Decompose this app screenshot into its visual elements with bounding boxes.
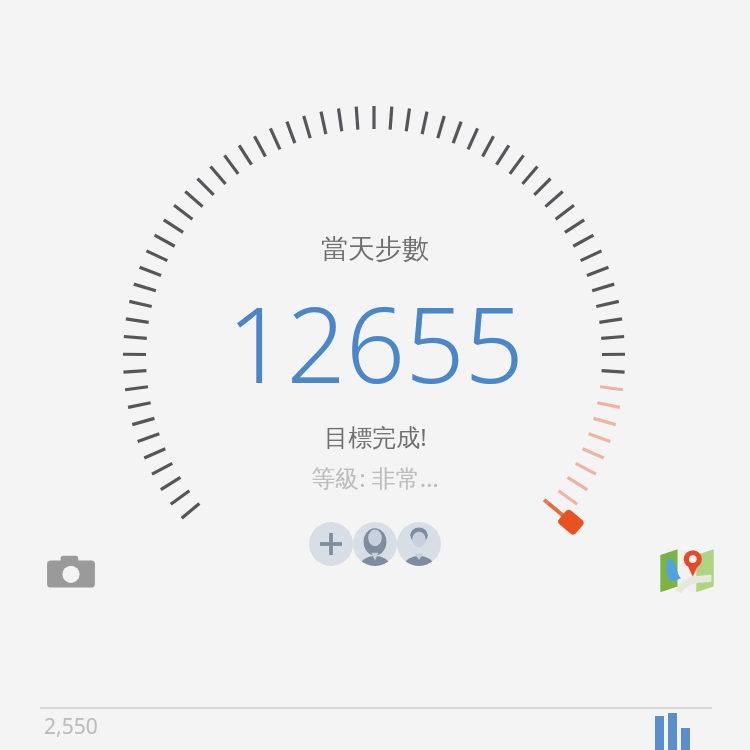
button[interactable]: Camera [44, 546, 98, 600]
button[interactable]: Add friend [309, 522, 353, 566]
staticText: 等級: 非常… [311, 461, 439, 494]
button[interactable]: Friend 1 [353, 522, 397, 566]
staticText: 目標完成! [324, 420, 427, 453]
staticText: 當天步數 [321, 232, 429, 266]
staticText: 2,550 [44, 712, 98, 741]
button[interactable]: Maps [656, 538, 718, 600]
staticText: 12655 [227, 272, 524, 414]
button[interactable]: Friend 2 [397, 522, 441, 566]
